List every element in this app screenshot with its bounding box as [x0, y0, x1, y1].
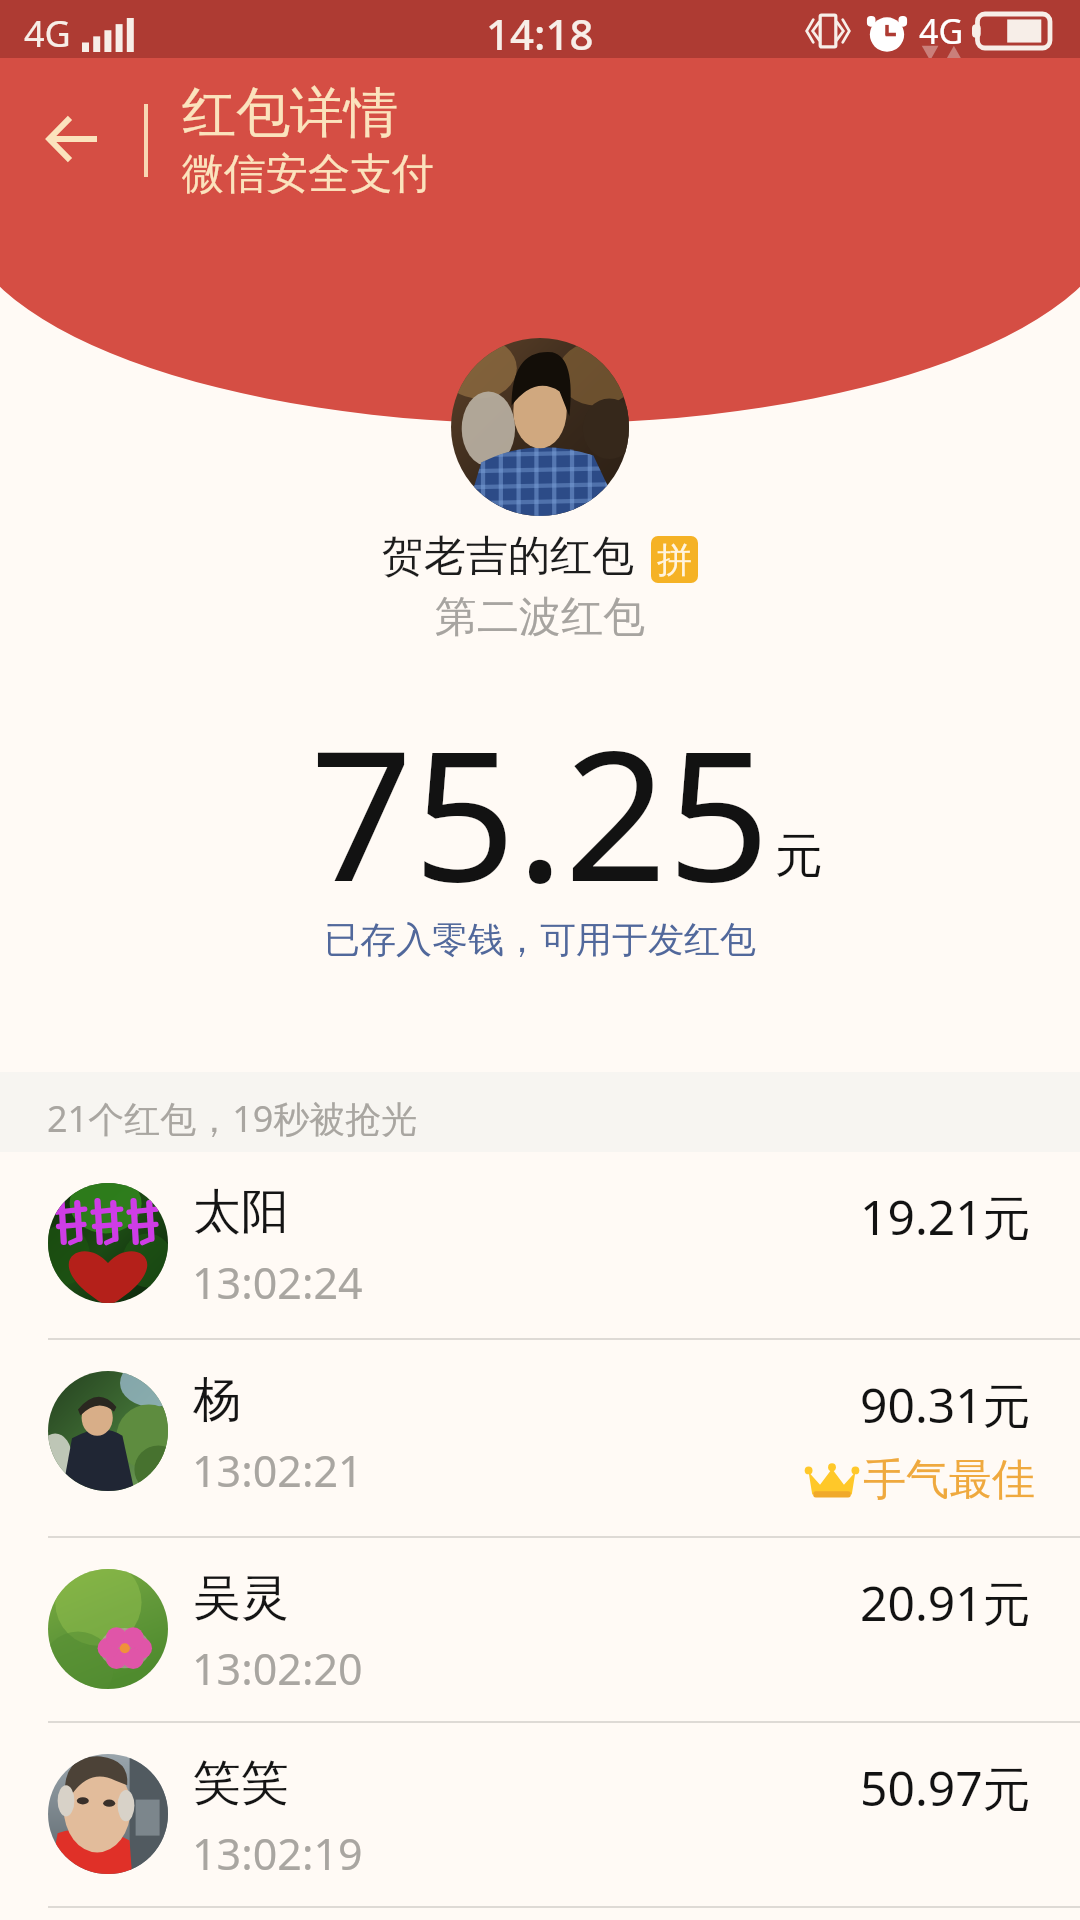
staticText: 元	[775, 826, 823, 886]
staticText: 19.21元	[860, 1184, 1031, 1250]
button[interactable]: 吴灵 avatar	[0, 1538, 1080, 1721]
staticText: 20.91元	[860, 1570, 1031, 1636]
button[interactable]: 太阳 avatar	[0, 1152, 1080, 1338]
staticText: 21个红包，19秒被抢光	[47, 1094, 418, 1143]
staticText: 杨	[193, 1370, 241, 1430]
button[interactable]: 杨 avatar	[0, 1340, 1080, 1536]
button[interactable]: 吴灵 avatar	[48, 1569, 168, 1689]
staticText: 红包详情	[182, 79, 398, 147]
button[interactable]: 笑笑 avatar	[48, 1754, 168, 1874]
staticText: 微信安全支付	[182, 148, 434, 201]
button[interactable]: Back	[12, 84, 132, 194]
staticText: 太阳	[193, 1182, 289, 1242]
staticText: 14:18	[486, 5, 594, 62]
staticText: 手气最佳	[863, 1453, 1035, 1507]
staticText: 13:02:20	[192, 1639, 363, 1698]
staticText: 吴灵	[193, 1568, 289, 1628]
staticText: 13:02:24	[192, 1253, 363, 1312]
button[interactable]: 笑笑 avatar	[0, 1723, 1080, 1906]
staticText: 已存入零钱，可用于发红包	[324, 917, 756, 962]
button[interactable]: Sender avatar	[451, 338, 629, 516]
button[interactable]: 杨 avatar	[48, 1371, 168, 1491]
staticText: 4G	[24, 9, 71, 58]
staticText: 50.97元	[860, 1755, 1031, 1821]
staticText: 第二波红包	[435, 591, 645, 644]
staticText: 笑笑	[193, 1753, 289, 1813]
staticText: 贺老吉的红包	[382, 530, 634, 583]
staticText: 拼	[657, 538, 692, 582]
staticText: 75.25	[310, 689, 771, 934]
staticText: 4G	[919, 8, 964, 54]
staticText: 13:02:21	[192, 1441, 363, 1500]
button[interactable]: 太阳 avatar	[48, 1183, 168, 1303]
staticText: 90.31元	[860, 1372, 1031, 1438]
staticText: 13:02:19	[192, 1824, 363, 1883]
